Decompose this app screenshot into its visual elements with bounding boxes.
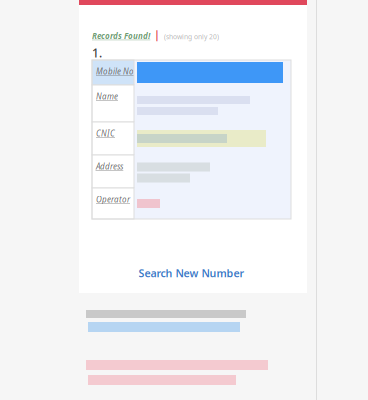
staticText: Address [96, 161, 123, 172]
staticText: Name [96, 91, 118, 102]
staticText: 1. [92, 45, 102, 61]
staticText: Search New Number [138, 266, 244, 280]
staticText: CNIC [96, 128, 115, 139]
staticText: | [154, 27, 160, 41]
staticText: Records Found! [92, 30, 150, 41]
staticText: (showing only 20) [164, 32, 219, 41]
button[interactable]: Search New Number [92, 266, 291, 280]
staticText: Operator [96, 194, 130, 205]
staticText: Mobile No [96, 66, 134, 77]
